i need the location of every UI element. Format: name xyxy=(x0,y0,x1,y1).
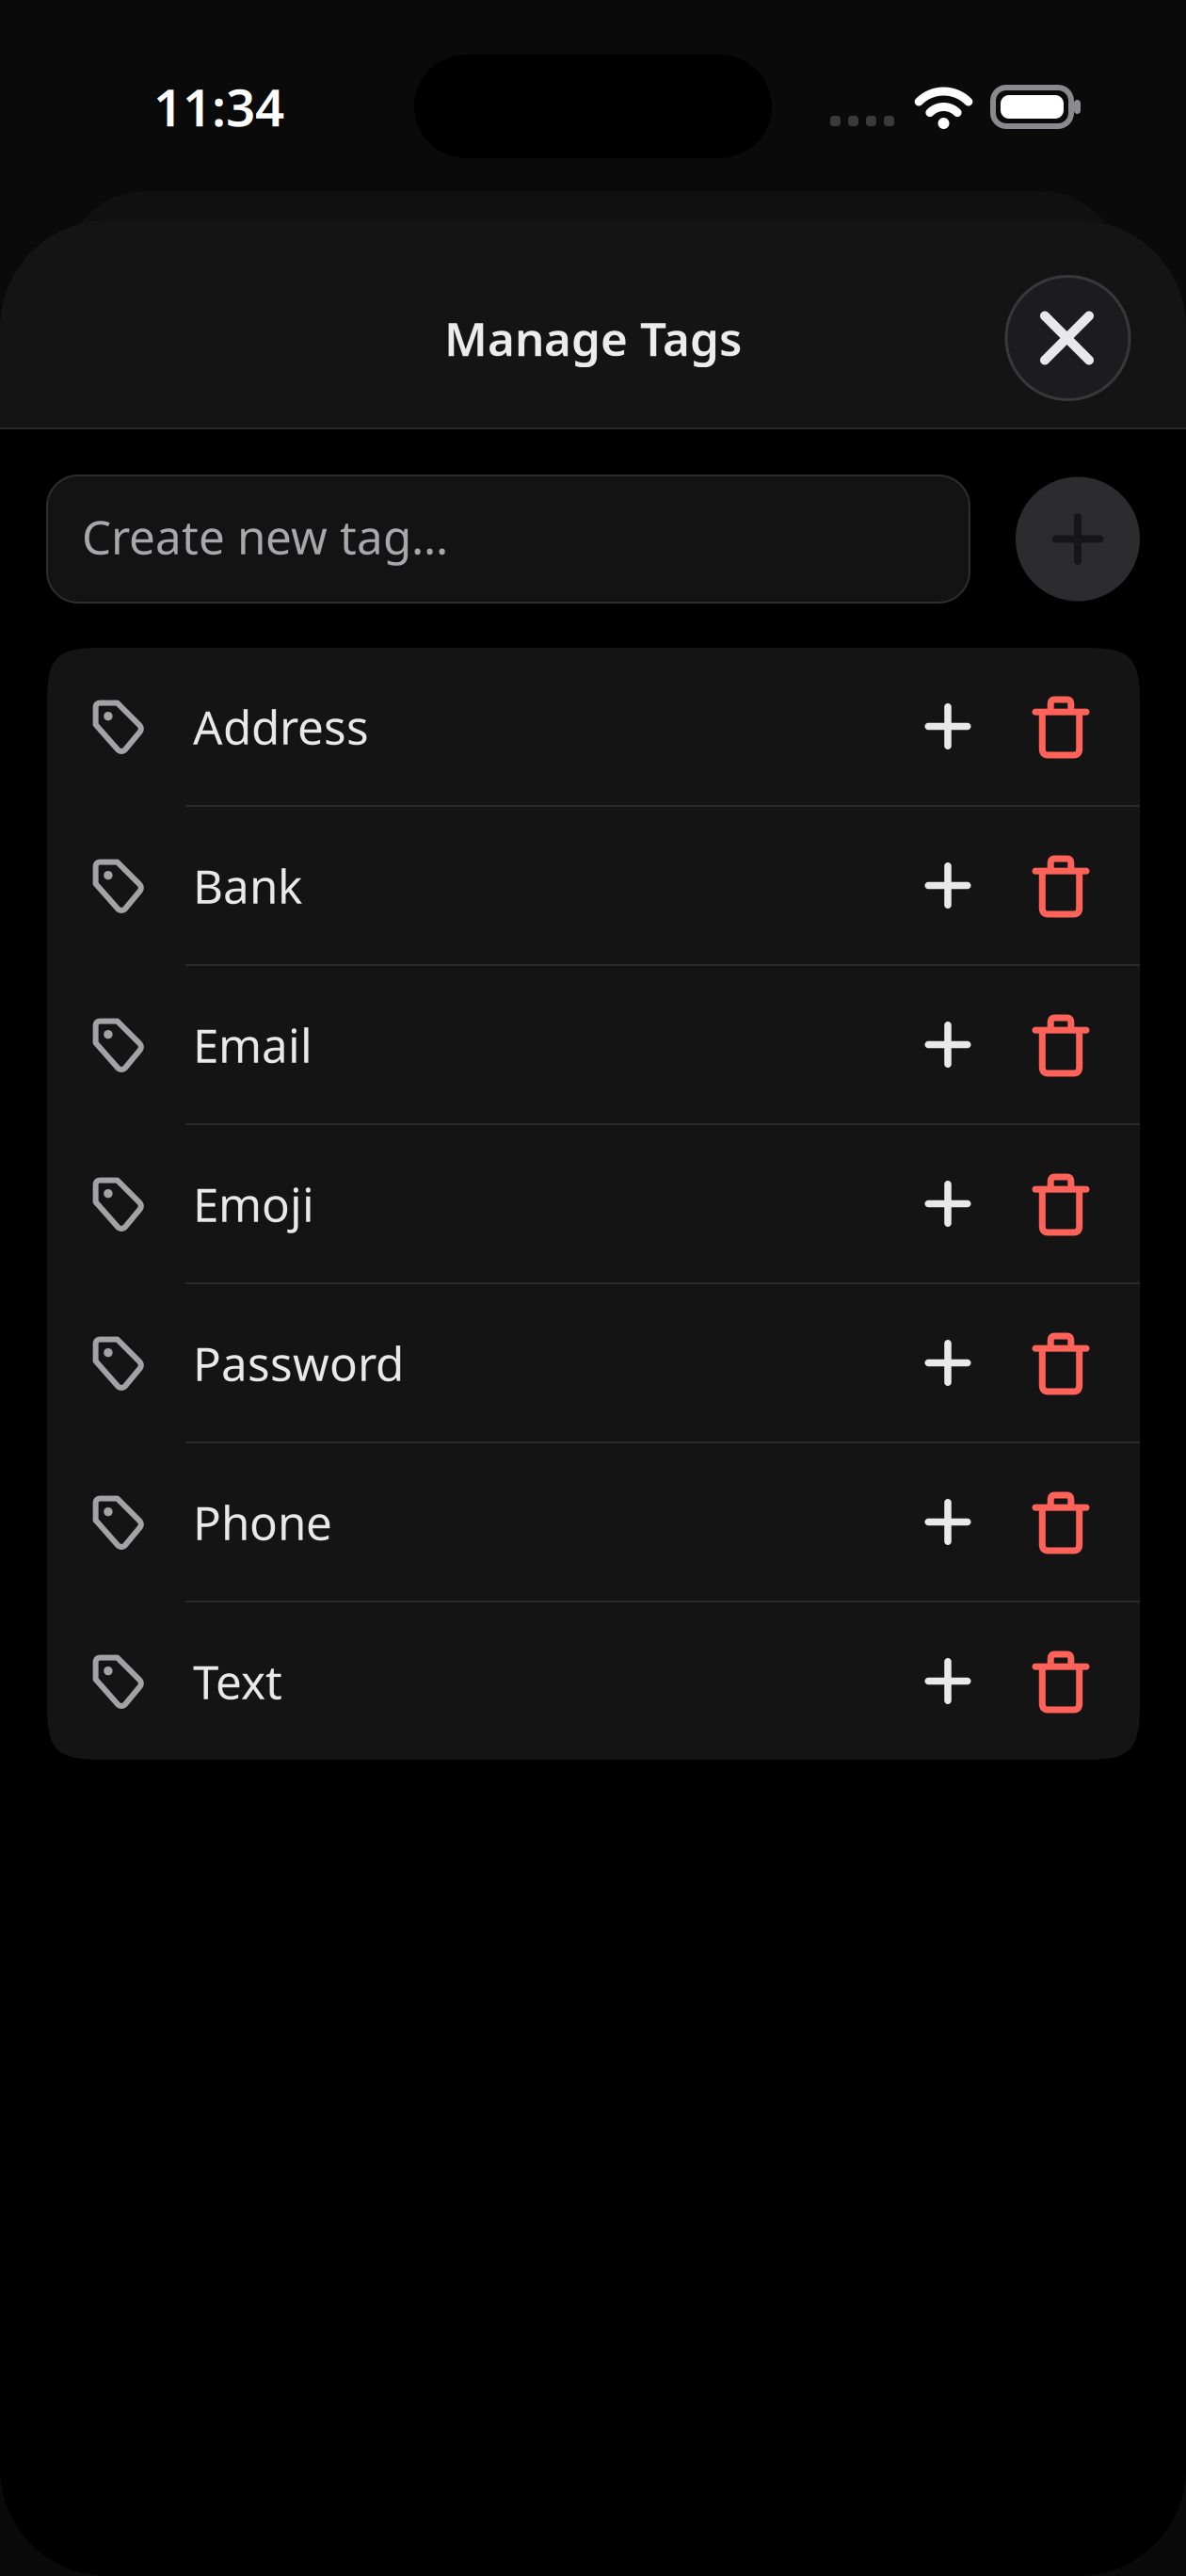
staticText: Emoji xyxy=(193,1173,314,1235)
button[interactable]: Add Address xyxy=(897,648,999,805)
button[interactable]: Add Bank xyxy=(897,807,999,964)
staticText: Create new tag... xyxy=(82,505,448,567)
button[interactable]: Close xyxy=(1006,276,1130,400)
staticText: Password xyxy=(193,1332,404,1394)
button[interactable]: Delete Bank xyxy=(999,807,1123,964)
button[interactable]: Delete Text xyxy=(999,1602,1123,1760)
staticText: Manage Tags xyxy=(444,307,742,369)
staticText: 11:34 xyxy=(153,72,284,141)
button[interactable]: Delete Email xyxy=(999,966,1123,1123)
button[interactable]: Add Password xyxy=(897,1284,999,1441)
button[interactable]: Add tag xyxy=(1016,477,1140,601)
button[interactable]: Delete Password xyxy=(999,1284,1123,1441)
button[interactable]: Create new tag... xyxy=(47,475,970,603)
button[interactable]: Add Phone xyxy=(897,1443,999,1601)
button[interactable]: Delete Phone xyxy=(999,1443,1123,1601)
staticText: Email xyxy=(193,1014,313,1075)
staticText: Address xyxy=(193,696,369,757)
staticText: Phone xyxy=(193,1491,332,1553)
button[interactable]: Add Emoji xyxy=(897,1125,999,1282)
button[interactable]: Delete Emoji xyxy=(999,1125,1123,1282)
button[interactable]: Delete Address xyxy=(999,648,1123,805)
button[interactable]: Add Email xyxy=(897,966,999,1123)
button[interactable]: Add Text xyxy=(897,1602,999,1760)
staticText: Bank xyxy=(193,855,302,916)
staticText: Text xyxy=(193,1650,282,1712)
